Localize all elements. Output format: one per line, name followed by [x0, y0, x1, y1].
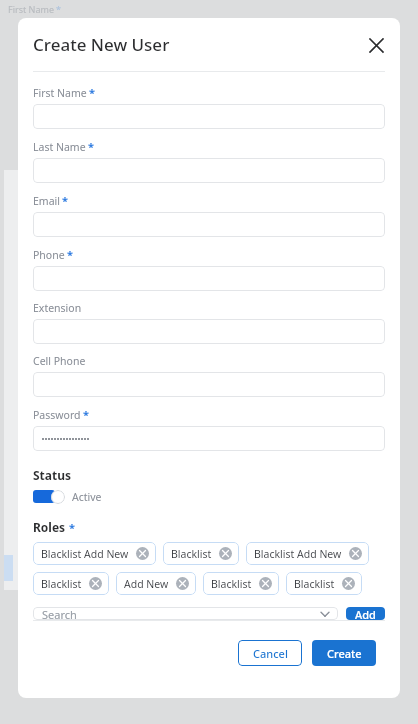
button[interactable] — [33, 266, 385, 291]
staticText: Add — [355, 607, 376, 620]
staticText: Email — [33, 194, 60, 208]
staticText: Blacklist — [171, 547, 212, 561]
staticText: Extension — [33, 301, 82, 315]
staticText: * — [62, 193, 68, 208]
staticText: * — [88, 139, 94, 154]
staticText: * — [67, 247, 73, 262]
staticText: First Name — [8, 3, 54, 15]
button[interactable]: Cancel — [238, 640, 302, 666]
staticText: Blacklist Add New — [41, 547, 129, 561]
staticText: Active — [72, 490, 102, 504]
button[interactable]: Blacklist — [33, 572, 109, 595]
button[interactable]: Create — [312, 640, 376, 666]
button[interactable] — [33, 104, 385, 129]
staticText: * — [89, 85, 95, 100]
button[interactable]: Close — [362, 31, 390, 59]
staticText: Blacklist Add New — [254, 547, 342, 561]
button[interactable]: Blacklist Add New — [33, 542, 156, 565]
staticText: Add New — [124, 577, 169, 591]
staticText: Cell Phone — [33, 354, 86, 368]
staticText: Search — [42, 607, 320, 620]
button[interactable]: Blacklist — [286, 572, 362, 595]
button[interactable] — [33, 372, 385, 397]
button[interactable]: Blacklist — [203, 572, 279, 595]
staticText: Status — [33, 467, 72, 483]
button[interactable]: Active status toggle — [33, 489, 65, 504]
staticText: * — [56, 3, 61, 15]
staticText: Password — [33, 408, 81, 422]
staticText: Cancel — [253, 646, 288, 661]
staticText: Roles — [33, 519, 66, 535]
button[interactable]: Add New — [116, 572, 196, 595]
staticText: * — [69, 520, 75, 535]
staticText: Create New User — [33, 33, 362, 56]
button[interactable]: Blacklist Add New — [246, 542, 369, 565]
staticText: First Name — [33, 86, 87, 100]
button[interactable]: Add — [346, 607, 385, 620]
staticText: Blacklist — [41, 577, 82, 591]
button[interactable]: Blacklist — [163, 542, 239, 565]
staticText: * — [83, 407, 89, 422]
staticText: Blacklist — [211, 577, 252, 591]
staticText: Create — [327, 646, 362, 661]
staticText: Last Name — [33, 140, 86, 154]
staticText: Phone — [33, 248, 65, 262]
button[interactable] — [33, 426, 385, 451]
staticText: Blacklist — [294, 577, 335, 591]
button[interactable] — [33, 319, 385, 344]
button[interactable]: Search — [33, 607, 338, 620]
button[interactable] — [33, 158, 385, 183]
button[interactable] — [33, 212, 385, 237]
